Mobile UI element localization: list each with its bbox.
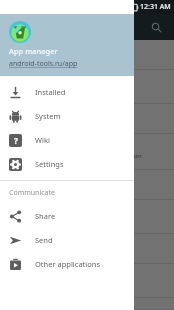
- staticText: Other applications: [35, 259, 100, 269]
- staticText: Communicate: [9, 188, 55, 198]
- button[interactable]: Send: [0, 228, 134, 252]
- button[interactable]: Settings: [0, 152, 134, 176]
- button[interactable]: ?: [0, 128, 134, 152]
- staticText: Wiki: [35, 135, 50, 145]
- staticText: Installed: [35, 87, 66, 97]
- staticText: android-tools.ru/app: [9, 59, 78, 69]
- staticText: 12:31 AM: [140, 2, 171, 12]
- staticText: Send: [35, 235, 53, 245]
- staticText: ?: [14, 135, 18, 146]
- staticText: System: [35, 111, 61, 121]
- button[interactable]: Share: [0, 204, 134, 228]
- staticText: supervisor: [112, 152, 142, 160]
- button[interactable]: App manager: [0, 14, 134, 76]
- button[interactable]: Other applications: [0, 252, 134, 276]
- button[interactable]: Installed: [0, 80, 134, 104]
- button[interactable]: Search: [146, 17, 166, 37]
- staticText: Settings: [35, 159, 64, 169]
- staticText: App manager: [9, 46, 58, 56]
- staticText: Share: [35, 211, 56, 221]
- button[interactable]: System: [0, 104, 134, 128]
